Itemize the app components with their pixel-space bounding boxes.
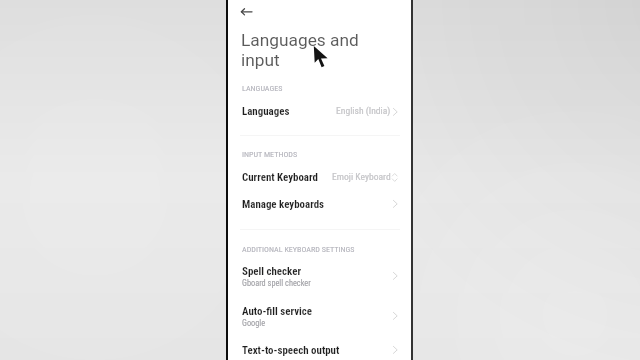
button[interactable]: Spell checker — [228, 261, 411, 289]
button[interactable]: Manage keyboards — [228, 194, 411, 216]
staticText: ADDITIONAL KEYBOARD SETTINGS — [242, 244, 355, 253]
staticText: Languages and input — [241, 30, 381, 71]
staticText: Google — [242, 318, 266, 328]
staticText: Spell checker — [242, 265, 302, 278]
staticText: Languages — [242, 105, 290, 118]
button[interactable]: Manage keyboards — [393, 200, 401, 208]
button[interactable]: Auto-fill service — [228, 301, 411, 329]
button[interactable]: Navigate up — [233, 0, 259, 26]
staticText: INPUT METHODS — [242, 149, 298, 158]
button[interactable]: Current Keyboard — [228, 167, 411, 189]
staticText: Manage keyboards — [242, 198, 324, 211]
button[interactable]: Current Keyboard — [392, 173, 400, 181]
button[interactable]: Languages — [393, 108, 401, 116]
button[interactable]: Text-to-speech output — [228, 340, 411, 360]
staticText: Emoji Keyboard — [332, 171, 391, 182]
button[interactable]: Languages — [228, 101, 411, 123]
button[interactable]: Spell checker — [393, 272, 401, 280]
staticText: Current Keyboard — [242, 171, 318, 184]
button[interactable]: Text-to-speech output — [393, 346, 401, 354]
staticText: Gboard spell checker — [242, 278, 311, 288]
staticText: Text-to-speech output — [242, 344, 340, 357]
button[interactable]: Auto-fill service — [393, 312, 401, 320]
staticText: Auto-fill service — [242, 305, 313, 318]
staticText: LANGUAGES — [242, 83, 283, 92]
staticText: English (India) — [336, 105, 391, 116]
